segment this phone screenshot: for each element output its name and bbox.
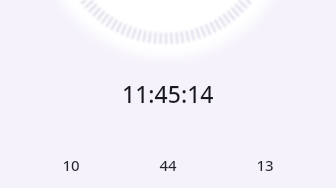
button[interactable]: 11:45:14: [122, 78, 214, 109]
staticText: 11:45:14: [122, 78, 214, 109]
button[interactable]: 13: [216, 153, 313, 177]
staticText: 13: [256, 155, 274, 175]
button[interactable]: 44: [119, 153, 216, 177]
staticText: 44: [159, 155, 177, 175]
staticText: 10: [62, 155, 80, 175]
button[interactable]: Timer dial: [0, 0, 336, 64]
button[interactable]: 10: [23, 153, 119, 177]
